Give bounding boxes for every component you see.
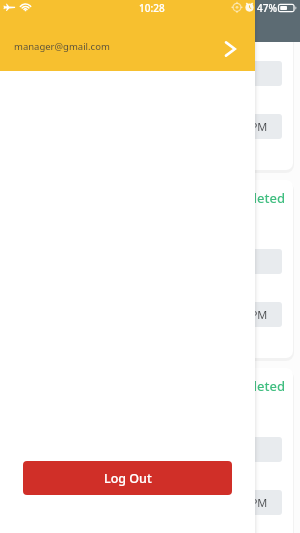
staticText: Completed [217,189,286,207]
other: Account switcher [220,38,250,60]
staticText: 47% [257,1,277,15]
button[interactable]: Completed [7,0,293,170]
button[interactable]: Completed [7,368,293,533]
staticText: 5:30 PM [226,495,268,510]
staticText: 5:30 PM [226,119,268,134]
staticText: Completed [217,1,286,19]
button[interactable]: Log Out [23,461,232,495]
staticText: 5:30 PM [226,307,268,322]
staticText: 10:28 [139,1,165,15]
button[interactable]: manager@gmail.com [0,22,255,71]
button[interactable]: Completed [7,180,293,358]
staticText: manager@gmail.com [14,40,110,53]
staticText: Log Out [104,470,152,487]
staticText: Completed [217,377,286,395]
